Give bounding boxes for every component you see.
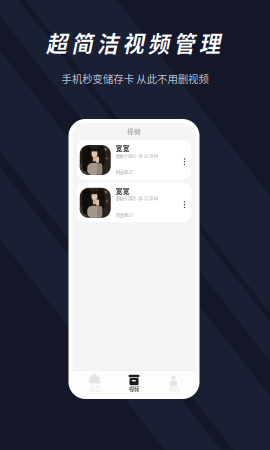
staticText: 时长00:17	[116, 169, 133, 175]
staticText: 更新于2021-10-12 10:54	[116, 195, 158, 202]
button[interactable]: 视频	[118, 373, 150, 393]
button[interactable]: 宽宽	[77, 183, 191, 222]
staticText: 首页	[89, 385, 99, 393]
staticText: 宽宽	[116, 143, 130, 153]
button[interactable]: 我的	[157, 373, 189, 393]
staticText: 更新于2021-10-12 10:54	[116, 152, 158, 159]
staticText: 超简洁视频管理	[46, 27, 220, 58]
staticText: 手机秒变储存卡 从此不用删视频	[62, 71, 208, 86]
staticText: 时长00:17	[116, 212, 133, 218]
staticText: 宽宽	[116, 186, 130, 196]
staticText: 视频	[127, 127, 141, 136]
button[interactable]: 宽宽	[77, 140, 191, 179]
button[interactable]: 首页	[78, 373, 110, 393]
staticText: 我的	[168, 385, 178, 393]
staticText: 视频	[129, 385, 139, 393]
